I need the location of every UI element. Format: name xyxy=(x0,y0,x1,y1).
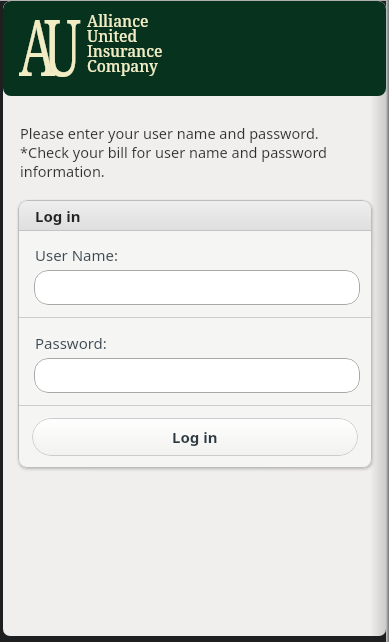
button[interactable] xyxy=(34,270,360,305)
staticText: Please enter your user name and password… xyxy=(20,123,328,181)
staticText: Log in xyxy=(35,206,81,226)
staticText: U xyxy=(44,1,81,88)
staticText: Alliance United Insurance Company xyxy=(87,10,163,76)
button[interactable] xyxy=(34,358,360,393)
staticText: A xyxy=(19,1,55,88)
staticText: Password: xyxy=(35,333,107,353)
button[interactable]: Log in xyxy=(32,418,358,456)
staticText: User Name: xyxy=(35,245,119,265)
staticText: Log in xyxy=(172,427,218,447)
